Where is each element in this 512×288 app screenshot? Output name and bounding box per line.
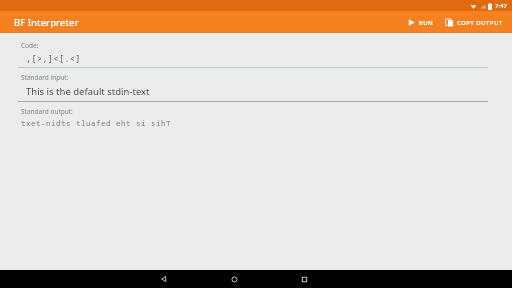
staticText: txet-nidts tluafed eht si sihT — [21, 118, 171, 128]
staticText: This is the default stdin-text — [26, 85, 150, 98]
button[interactable]: This is the default stdin-text — [0, 83, 512, 101]
staticText: BF Interpreter — [14, 16, 79, 29]
other: Copy output — [445, 18, 454, 27]
staticText: RUN — [419, 19, 434, 27]
staticText: COPY OUTPUT — [457, 19, 503, 27]
button[interactable]: Copy output — [441, 15, 507, 30]
staticText: Code: — [21, 41, 39, 50]
staticText: Standard input: — [21, 73, 69, 82]
staticText: Standard output: — [21, 107, 73, 116]
other: Run — [407, 18, 416, 27]
staticText: ,[>,]<[.<] — [26, 53, 81, 64]
button[interactable]: ,[>,]<[.<] — [0, 51, 512, 67]
staticText: 7:47 — [495, 2, 507, 10]
button[interactable]: Home — [199, 270, 269, 288]
button[interactable]: Recent apps — [269, 270, 339, 288]
button[interactable]: Back — [129, 270, 199, 288]
button[interactable]: Run — [403, 15, 438, 30]
